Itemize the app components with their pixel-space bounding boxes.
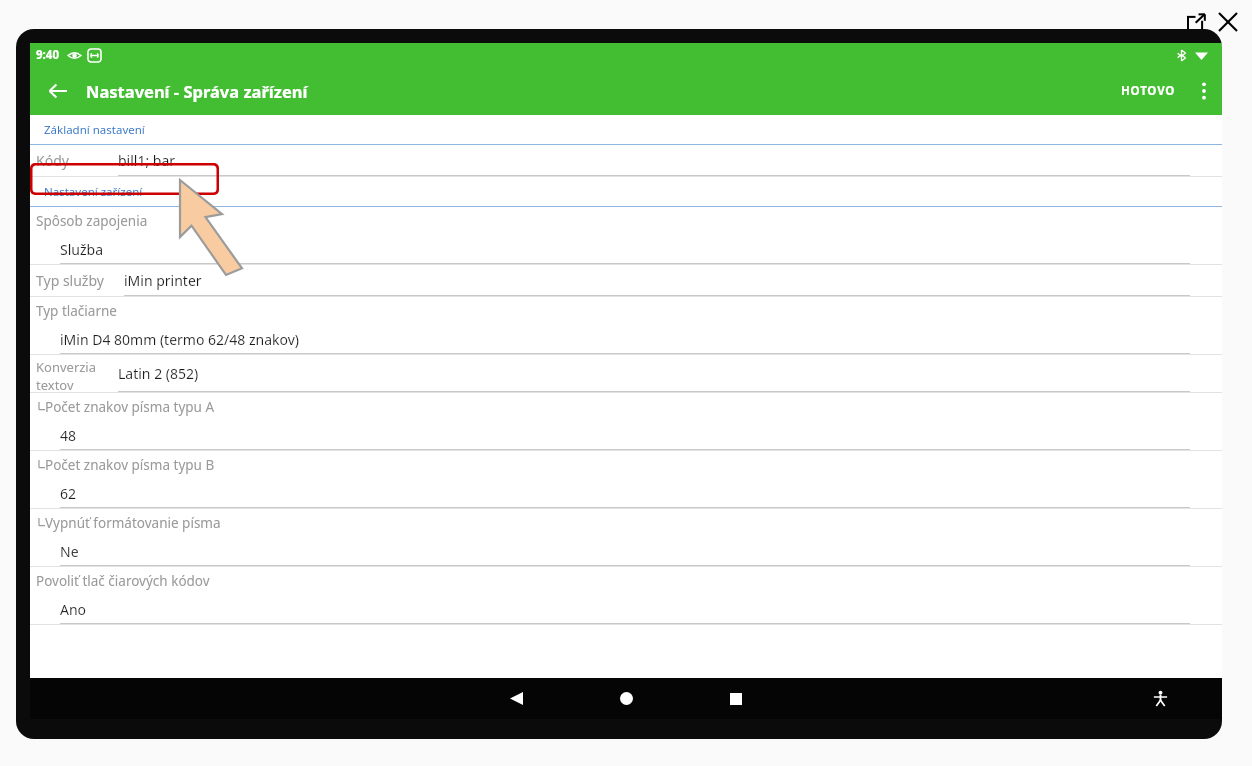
staticText: Kódy: [36, 151, 69, 170]
staticText: Služba: [60, 240, 103, 259]
staticText: Počet znakov písma typu B: [45, 456, 215, 474]
staticText: 62: [60, 484, 77, 503]
button[interactable]: Kódy: [30, 145, 1222, 177]
staticText: Počet znakov písma typu A: [45, 398, 215, 416]
button[interactable]: More options: [1186, 67, 1222, 115]
staticText: Vypnúť formátovanie písma: [45, 514, 221, 532]
button[interactable]: Back: [471, 678, 561, 719]
staticText: textov: [36, 376, 74, 392]
staticText: iMin D4 80mm (termo 62/48 znakov): [60, 330, 299, 349]
staticText: Spôsob zapojenia: [36, 212, 148, 230]
staticText: Konverzia: [36, 358, 97, 376]
staticText: Základní nastavení: [44, 122, 145, 138]
staticText: Povoliť tlač čiarových kódov: [36, 572, 210, 590]
button[interactable]: Povoliť tlač čiarových kódov: [30, 567, 1222, 625]
button[interactable]: Nastavení zařízení: [30, 177, 1222, 207]
button[interactable]: Recent apps: [691, 678, 781, 719]
staticText: Typ služby: [36, 271, 104, 290]
button[interactable]: Počet znakov písma typu B: [30, 451, 1222, 509]
button[interactable]: Accessibility: [1138, 678, 1182, 719]
staticText: 9:40: [36, 47, 59, 63]
staticText: 48: [60, 426, 77, 445]
button[interactable]: Vypnúť formátovanie písma: [30, 509, 1222, 567]
button[interactable]: Typ tlačiarne: [30, 297, 1222, 355]
button[interactable]: Close: [1214, 8, 1242, 36]
staticText: Latin 2 (852): [118, 364, 199, 383]
staticText: Nastavení zařízení: [44, 184, 143, 200]
staticText: bill1; bar: [118, 151, 176, 170]
button[interactable]: HOTOVO: [1111, 67, 1186, 115]
button[interactable]: Spôsob zapojenia: [30, 207, 1222, 265]
button[interactable]: Konverzia: [30, 355, 1222, 393]
button[interactable]: Home: [581, 678, 671, 719]
staticText: Typ tlačiarne: [36, 302, 117, 320]
button[interactable]: Typ služby: [30, 265, 1222, 297]
staticText: Ano: [60, 600, 87, 619]
button[interactable]: Back: [30, 67, 86, 115]
button[interactable]: Základní nastavení: [30, 115, 1222, 145]
staticText: Nastavení - Správa zařízení: [86, 80, 308, 102]
staticText: iMin printer: [124, 271, 202, 290]
staticText: Ne: [60, 542, 79, 561]
button[interactable]: Open externally: [1182, 8, 1210, 36]
staticText: HOTOVO: [1121, 83, 1176, 99]
button[interactable]: Počet znakov písma typu A: [30, 393, 1222, 451]
